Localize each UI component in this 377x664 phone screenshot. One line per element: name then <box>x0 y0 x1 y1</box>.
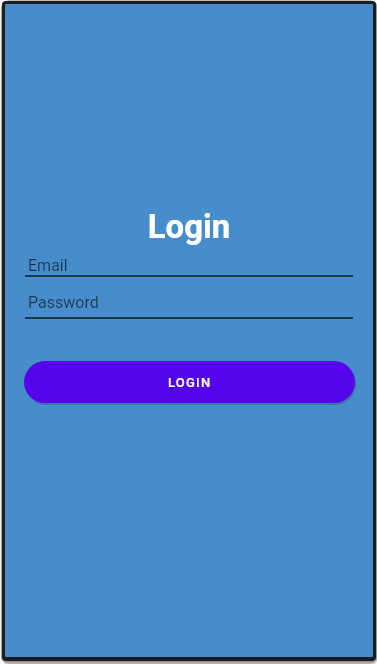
staticText: Email <box>28 256 68 275</box>
staticText: Login <box>5 207 373 246</box>
button[interactable]: Email <box>25 248 358 278</box>
button[interactable]: Password <box>25 290 358 320</box>
button[interactable]: LOGIN <box>24 361 355 403</box>
staticText: LOGIN <box>168 375 212 390</box>
staticText: Password <box>28 293 99 312</box>
